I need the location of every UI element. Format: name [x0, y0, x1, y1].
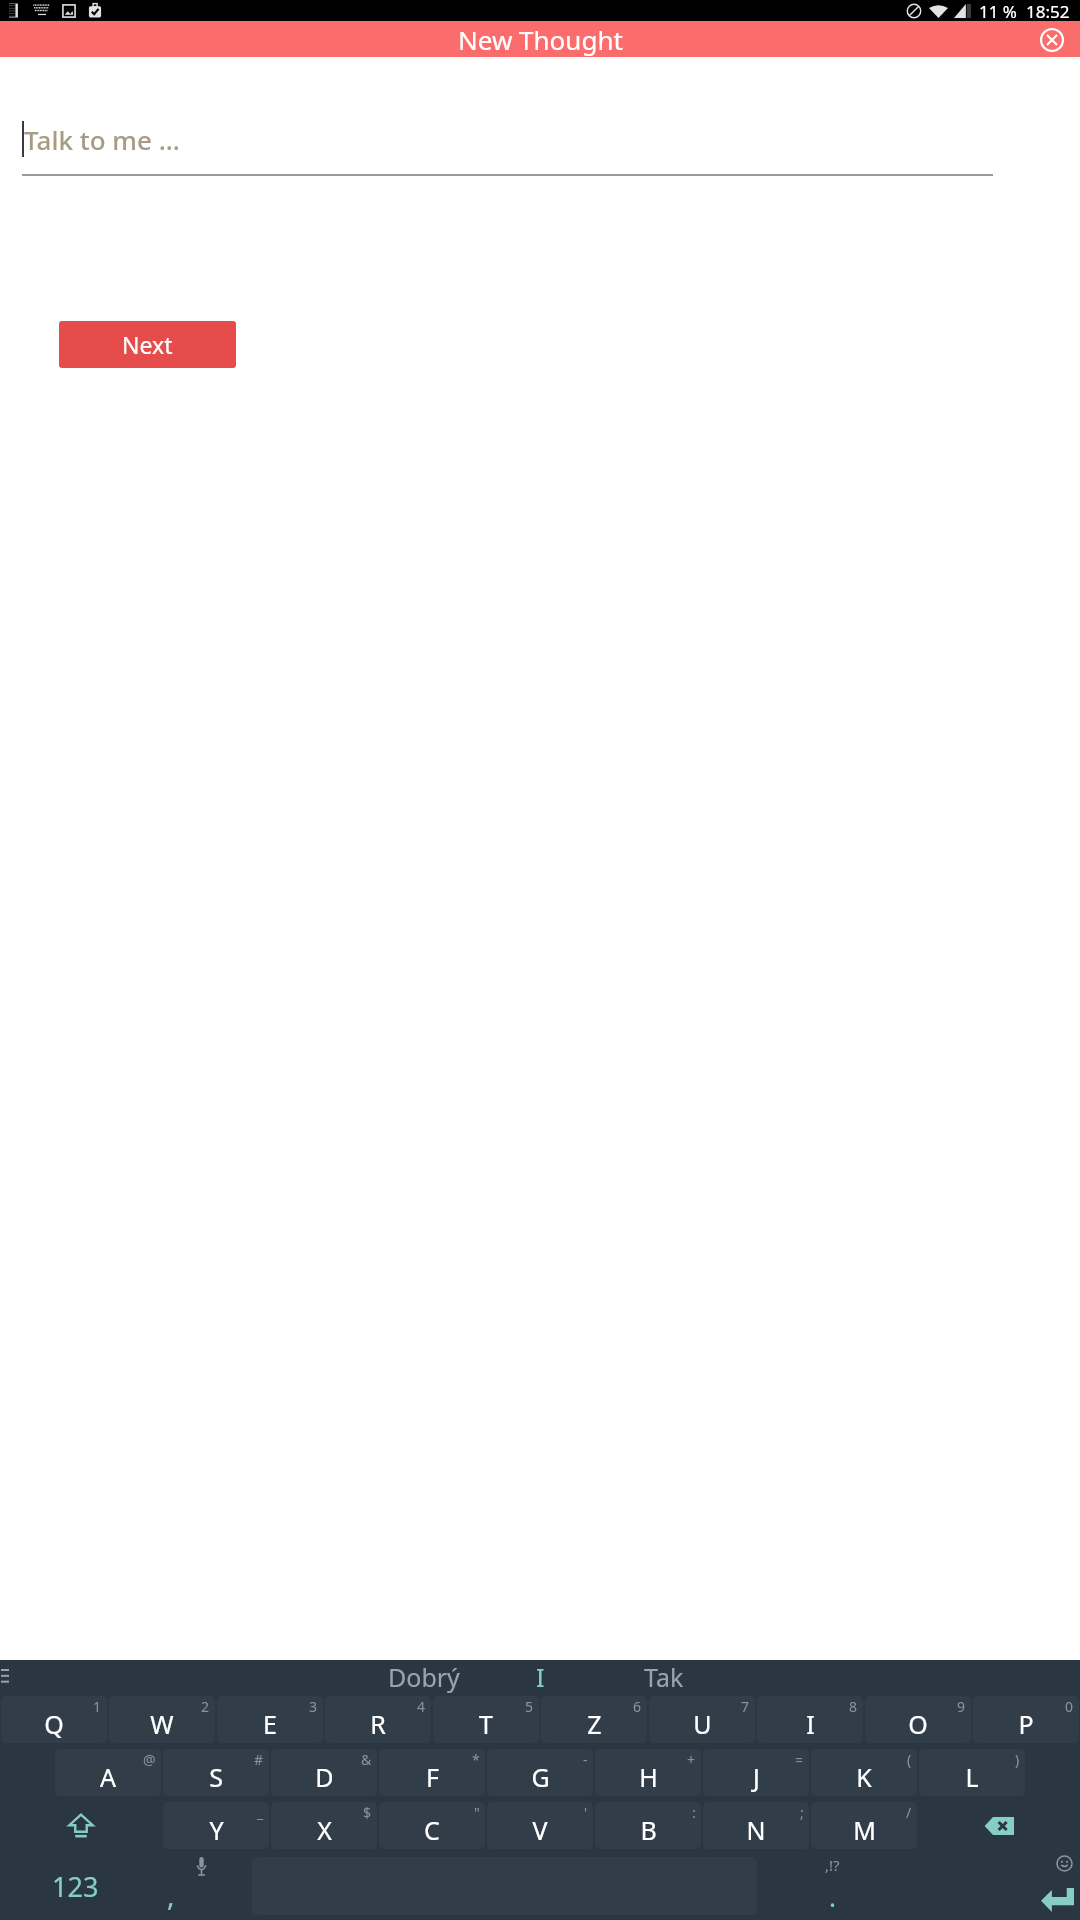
button[interactable]: 0	[973, 1696, 1079, 1743]
staticText: I	[536, 1660, 545, 1693]
staticText: "	[474, 1803, 480, 1822]
button[interactable]: )	[919, 1749, 1025, 1796]
button[interactable]: ;	[703, 1802, 809, 1849]
button[interactable]: 8	[757, 1696, 863, 1743]
staticText: G	[531, 1760, 550, 1794]
button[interactable]: Next	[59, 321, 236, 368]
button[interactable]: "	[379, 1802, 485, 1849]
button[interactable]: 2	[109, 1696, 215, 1743]
button[interactable]: @	[55, 1749, 161, 1796]
staticText: Talk to me ...	[24, 122, 180, 157]
button[interactable]: #	[163, 1749, 269, 1796]
button[interactable]: 4	[325, 1696, 431, 1743]
staticText: E	[263, 1707, 277, 1741]
staticText: *	[472, 1750, 480, 1769]
staticText: 1	[93, 1697, 102, 1716]
staticText: 8	[849, 1697, 858, 1716]
staticText: =	[795, 1750, 804, 1769]
staticText: Q	[44, 1707, 64, 1741]
button[interactable]: Backspace	[918, 1799, 1080, 1852]
staticText: 0	[1065, 1697, 1074, 1716]
staticText: New Thought	[458, 22, 623, 57]
staticText: 18:52	[1026, 0, 1070, 21]
button[interactable]: I	[536, 1660, 545, 1693]
staticText: Y	[209, 1813, 224, 1847]
staticText: 9	[957, 1697, 966, 1716]
staticText: '	[584, 1803, 588, 1822]
staticText: T	[479, 1707, 493, 1741]
button[interactable]: /	[811, 1802, 917, 1849]
staticText: M	[853, 1813, 876, 1847]
button[interactable]: 3	[217, 1696, 323, 1743]
staticText: -	[583, 1750, 588, 1769]
staticText: _	[257, 1803, 264, 1822]
button[interactable]: -	[487, 1749, 593, 1796]
button[interactable]: '	[487, 1802, 593, 1849]
staticText: O	[908, 1707, 928, 1741]
button[interactable]: Shift	[0, 1799, 162, 1852]
button[interactable]: *	[379, 1749, 485, 1796]
staticText: :	[692, 1803, 696, 1822]
button[interactable]: Dobrý	[388, 1660, 460, 1693]
button[interactable]: 9	[865, 1696, 971, 1743]
staticText: D	[315, 1760, 334, 1794]
staticText: 11 %	[979, 0, 1017, 21]
staticText: 2	[201, 1697, 210, 1716]
staticText: 3	[309, 1697, 318, 1716]
button[interactable]: +	[595, 1749, 701, 1796]
staticText: +	[687, 1750, 696, 1769]
staticText: U	[693, 1707, 712, 1741]
staticText: C	[424, 1813, 440, 1847]
staticText: )	[1015, 1750, 1020, 1769]
staticText: 6	[633, 1697, 642, 1716]
button[interactable]: Talk to me ...	[22, 121, 993, 157]
button[interactable]: Period and punctuation	[757, 1852, 908, 1920]
staticText: 123	[52, 1868, 99, 1905]
staticText: H	[639, 1760, 658, 1794]
staticText: ;	[800, 1803, 804, 1822]
button[interactable]: :	[595, 1802, 701, 1849]
staticText: W	[150, 1707, 174, 1741]
staticText: V	[532, 1813, 548, 1847]
button[interactable]: $	[271, 1802, 377, 1849]
staticText: #	[254, 1750, 264, 1769]
staticText: K	[856, 1760, 872, 1794]
staticText: S	[209, 1760, 223, 1794]
staticText: L	[965, 1760, 979, 1794]
staticText: $	[363, 1803, 372, 1822]
staticText: 5	[525, 1697, 534, 1716]
button[interactable]: 7	[649, 1696, 755, 1743]
staticText: P	[1018, 1707, 1034, 1741]
staticText: 4	[417, 1697, 426, 1716]
staticText: Next	[122, 329, 173, 360]
button[interactable]: 5	[433, 1696, 539, 1743]
staticText: /	[906, 1803, 912, 1822]
button[interactable]: =	[703, 1749, 809, 1796]
staticText: R	[370, 1707, 386, 1741]
button[interactable]: Comma and voice input	[151, 1852, 252, 1920]
button[interactable]: 1	[1, 1696, 107, 1743]
button[interactable]: 6	[541, 1696, 647, 1743]
staticText: ,	[167, 1876, 175, 1914]
staticText: 7	[741, 1697, 750, 1716]
button[interactable]: &	[271, 1749, 377, 1796]
button[interactable]: _	[163, 1802, 269, 1849]
button[interactable]: Close	[1037, 25, 1066, 54]
button[interactable]: 123	[0, 1852, 151, 1920]
staticText: J	[753, 1760, 760, 1794]
button[interactable]: Tak	[644, 1660, 684, 1693]
staticText: .	[829, 1879, 836, 1914]
staticText: (	[907, 1750, 912, 1769]
staticText: A	[100, 1760, 116, 1794]
staticText: Z	[587, 1707, 602, 1741]
button[interactable]: (	[811, 1749, 917, 1796]
staticText: F	[426, 1760, 439, 1794]
staticText: ,!?	[825, 1855, 840, 1875]
staticText: X	[317, 1813, 332, 1847]
staticText: @	[143, 1750, 156, 1769]
button[interactable]: Enter	[908, 1852, 1080, 1920]
staticText: N	[746, 1813, 766, 1847]
staticText: B	[640, 1813, 657, 1847]
staticText: &	[361, 1750, 372, 1769]
